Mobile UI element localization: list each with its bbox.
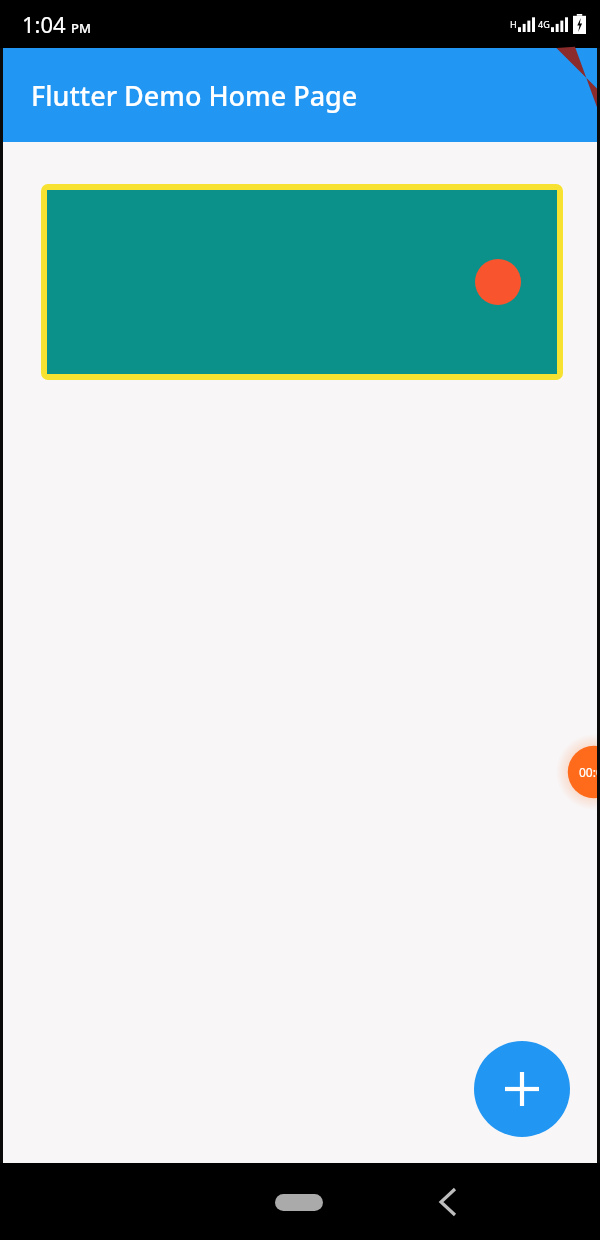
staticText: Flutter Demo Home Page — [31, 77, 358, 114]
button[interactable]: Add — [474, 1041, 570, 1137]
staticText: 00:00 — [579, 764, 600, 780]
button[interactable]: Timer — [556, 734, 600, 810]
button[interactable] — [47, 190, 557, 374]
button[interactable]: Back — [418, 1172, 478, 1232]
staticText: 4G — [538, 18, 550, 30]
staticText: PM — [71, 19, 91, 37]
staticText: 1:04 — [22, 9, 66, 39]
staticText: H — [510, 18, 517, 30]
button[interactable]: Home — [247, 1184, 351, 1220]
